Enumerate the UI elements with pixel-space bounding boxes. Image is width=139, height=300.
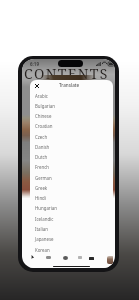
staticText: CONTENTS [24,64,114,83]
button[interactable]: Greek [30,183,113,193]
staticText: Czech [35,134,48,140]
button[interactable]: Dutch [30,152,113,162]
button[interactable]: Arabic [30,91,113,101]
staticText: Croatian [35,123,53,129]
staticText: Icelandic [35,216,54,222]
button[interactable]: Japanese [30,234,113,244]
button[interactable]: Hungarian [30,203,113,213]
button[interactable]: Tool [46,256,51,259]
button[interactable]: Profile [107,256,113,264]
staticText: Dutch [35,154,48,160]
button[interactable]: Close [32,81,41,90]
staticText: Translate [59,82,80,88]
button[interactable]: Italian [30,224,113,234]
button[interactable]: Pointer [31,255,35,259]
button[interactable]: Icelandic [30,214,113,224]
button[interactable]: German [30,173,113,183]
button[interactable]: Chinese [30,111,113,121]
staticText: Italian [35,226,48,232]
button[interactable]: Hindi [30,193,113,203]
staticText: Arabic [35,93,48,99]
button[interactable]: Note [78,256,82,259]
staticText: Bulgarian [35,103,55,109]
button[interactable]: Croatian [30,121,113,131]
button[interactable]: Danish [30,142,113,152]
staticText: Japanese [35,236,54,242]
staticText: Chinese [35,113,52,119]
button[interactable]: Bulgarian [30,101,113,111]
staticText: Hungarian [35,205,57,211]
button[interactable]: French [30,162,113,172]
button[interactable]: Czech [30,132,113,142]
staticText: Korean [35,247,50,253]
staticText: Greek [35,185,48,191]
staticText: Hindi [35,195,46,201]
button[interactable]: Korean [30,245,113,255]
button[interactable]: Highlight [63,256,68,260]
staticText: German [35,175,52,181]
staticText: French [35,164,50,170]
staticText: 6:19 [30,61,39,67]
button[interactable]: Bookmark [89,257,94,260]
staticText: Danish [35,144,50,150]
